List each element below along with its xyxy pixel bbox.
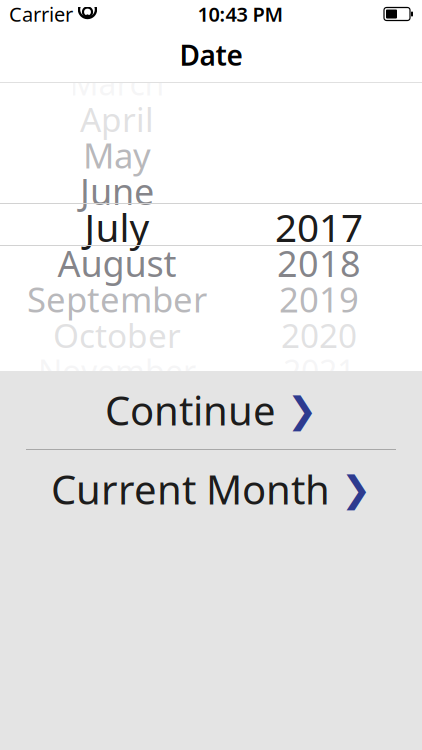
staticText: 2017 [275, 201, 363, 253]
staticText: November [38, 350, 196, 392]
button[interactable]: Continue [0, 371, 422, 449]
staticText: October [53, 313, 181, 357]
staticText: 2019 [279, 276, 359, 322]
staticText: Carrier [9, 1, 73, 27]
staticText: 2018 [277, 239, 361, 287]
button[interactable]: Current Month [0, 450, 422, 528]
staticText: April [80, 97, 154, 141]
staticText: July [84, 201, 149, 253]
staticText: 2021 [283, 350, 355, 392]
staticText: August [57, 239, 176, 287]
staticText: ❯ [341, 469, 371, 509]
staticText: Date [179, 36, 242, 74]
staticText: June [80, 167, 154, 215]
staticText: 10:43 PM [197, 1, 283, 27]
staticText: Current Month [51, 462, 330, 515]
staticText: September [27, 276, 207, 322]
staticText: March [69, 62, 164, 104]
staticText: Continue [105, 383, 276, 436]
staticText: May [83, 132, 151, 178]
staticText: ❯ [287, 390, 317, 430]
staticText [73, 1, 78, 27]
staticText: 2020 [281, 313, 357, 357]
